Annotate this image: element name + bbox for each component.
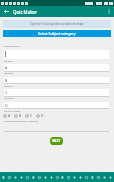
button[interactable]: Emoji category 12 [66, 175, 71, 180]
staticText: Enter question [4, 45, 20, 48]
staticText: D [41, 113, 44, 118]
button[interactable]: Emoji category 11 [60, 175, 65, 180]
staticText: D. [5, 103, 9, 108]
button[interactable]: B [14, 113, 25, 118]
button[interactable]: Emoji category 9 [49, 175, 54, 180]
button[interactable]: Emoji category 3 [13, 175, 18, 180]
button[interactable]: NEXT [50, 137, 63, 145]
button[interactable]: D. [4, 102, 109, 109]
button[interactable]: Emoji category 19 [108, 175, 113, 180]
button[interactable]: B. [4, 77, 109, 84]
button[interactable]: Emoji category 16 [90, 175, 95, 180]
button[interactable]: Emoji category 17 [96, 175, 101, 180]
staticText: Option B [4, 72, 14, 75]
button[interactable]: Emoji category 15 [84, 175, 89, 180]
button[interactable]: Tap here if your question contains an im… [3, 20, 111, 28]
button[interactable]: D [36, 113, 47, 118]
button[interactable]: Emoji category 18 [102, 175, 107, 180]
button[interactable]: C [25, 113, 36, 118]
staticText: Correct Answer [4, 110, 21, 113]
staticText: NEXT [52, 139, 61, 143]
staticText: Select Subject category [38, 31, 76, 36]
staticText: Option D [4, 97, 14, 100]
staticText: A. [5, 65, 9, 70]
button[interactable]: Emoji category 4 [19, 175, 24, 180]
staticText: Solution Explanation (Optional) [4, 120, 39, 123]
button[interactable]: C. [4, 89, 109, 96]
button[interactable] [4, 50, 109, 59]
staticText: Option C [4, 85, 14, 88]
button[interactable]: Emoji category 6 [31, 175, 36, 180]
button[interactable]: A [3, 113, 14, 118]
staticText: Tap here if your question contains an im… [30, 22, 84, 26]
button[interactable]: Back [0, 6, 13, 17]
staticText: Quiz Maker [13, 9, 37, 15]
button[interactable]: Emoji category 13 [72, 175, 77, 180]
button[interactable]: Emoji category 5 [25, 175, 30, 180]
button[interactable]: Emoji category 10 [55, 175, 60, 180]
staticText: C [30, 113, 33, 118]
button[interactable]: More options [104, 6, 114, 17]
button[interactable]: A. [4, 64, 109, 71]
button[interactable]: Emoji category 1 [1, 175, 6, 180]
staticText: C. [5, 90, 9, 95]
button[interactable]: Emoji category 2 [7, 175, 12, 180]
staticText: B [19, 113, 22, 118]
staticText: B. [5, 78, 9, 83]
staticText: Option A [4, 60, 14, 63]
button[interactable]: Emoji category 7 [37, 175, 42, 180]
button[interactable]: Emoji category 14 [78, 175, 83, 180]
staticText: A [8, 113, 11, 118]
button[interactable]: Select Subject category [3, 30, 111, 37]
button[interactable]: Emoji category 8 [43, 175, 48, 180]
